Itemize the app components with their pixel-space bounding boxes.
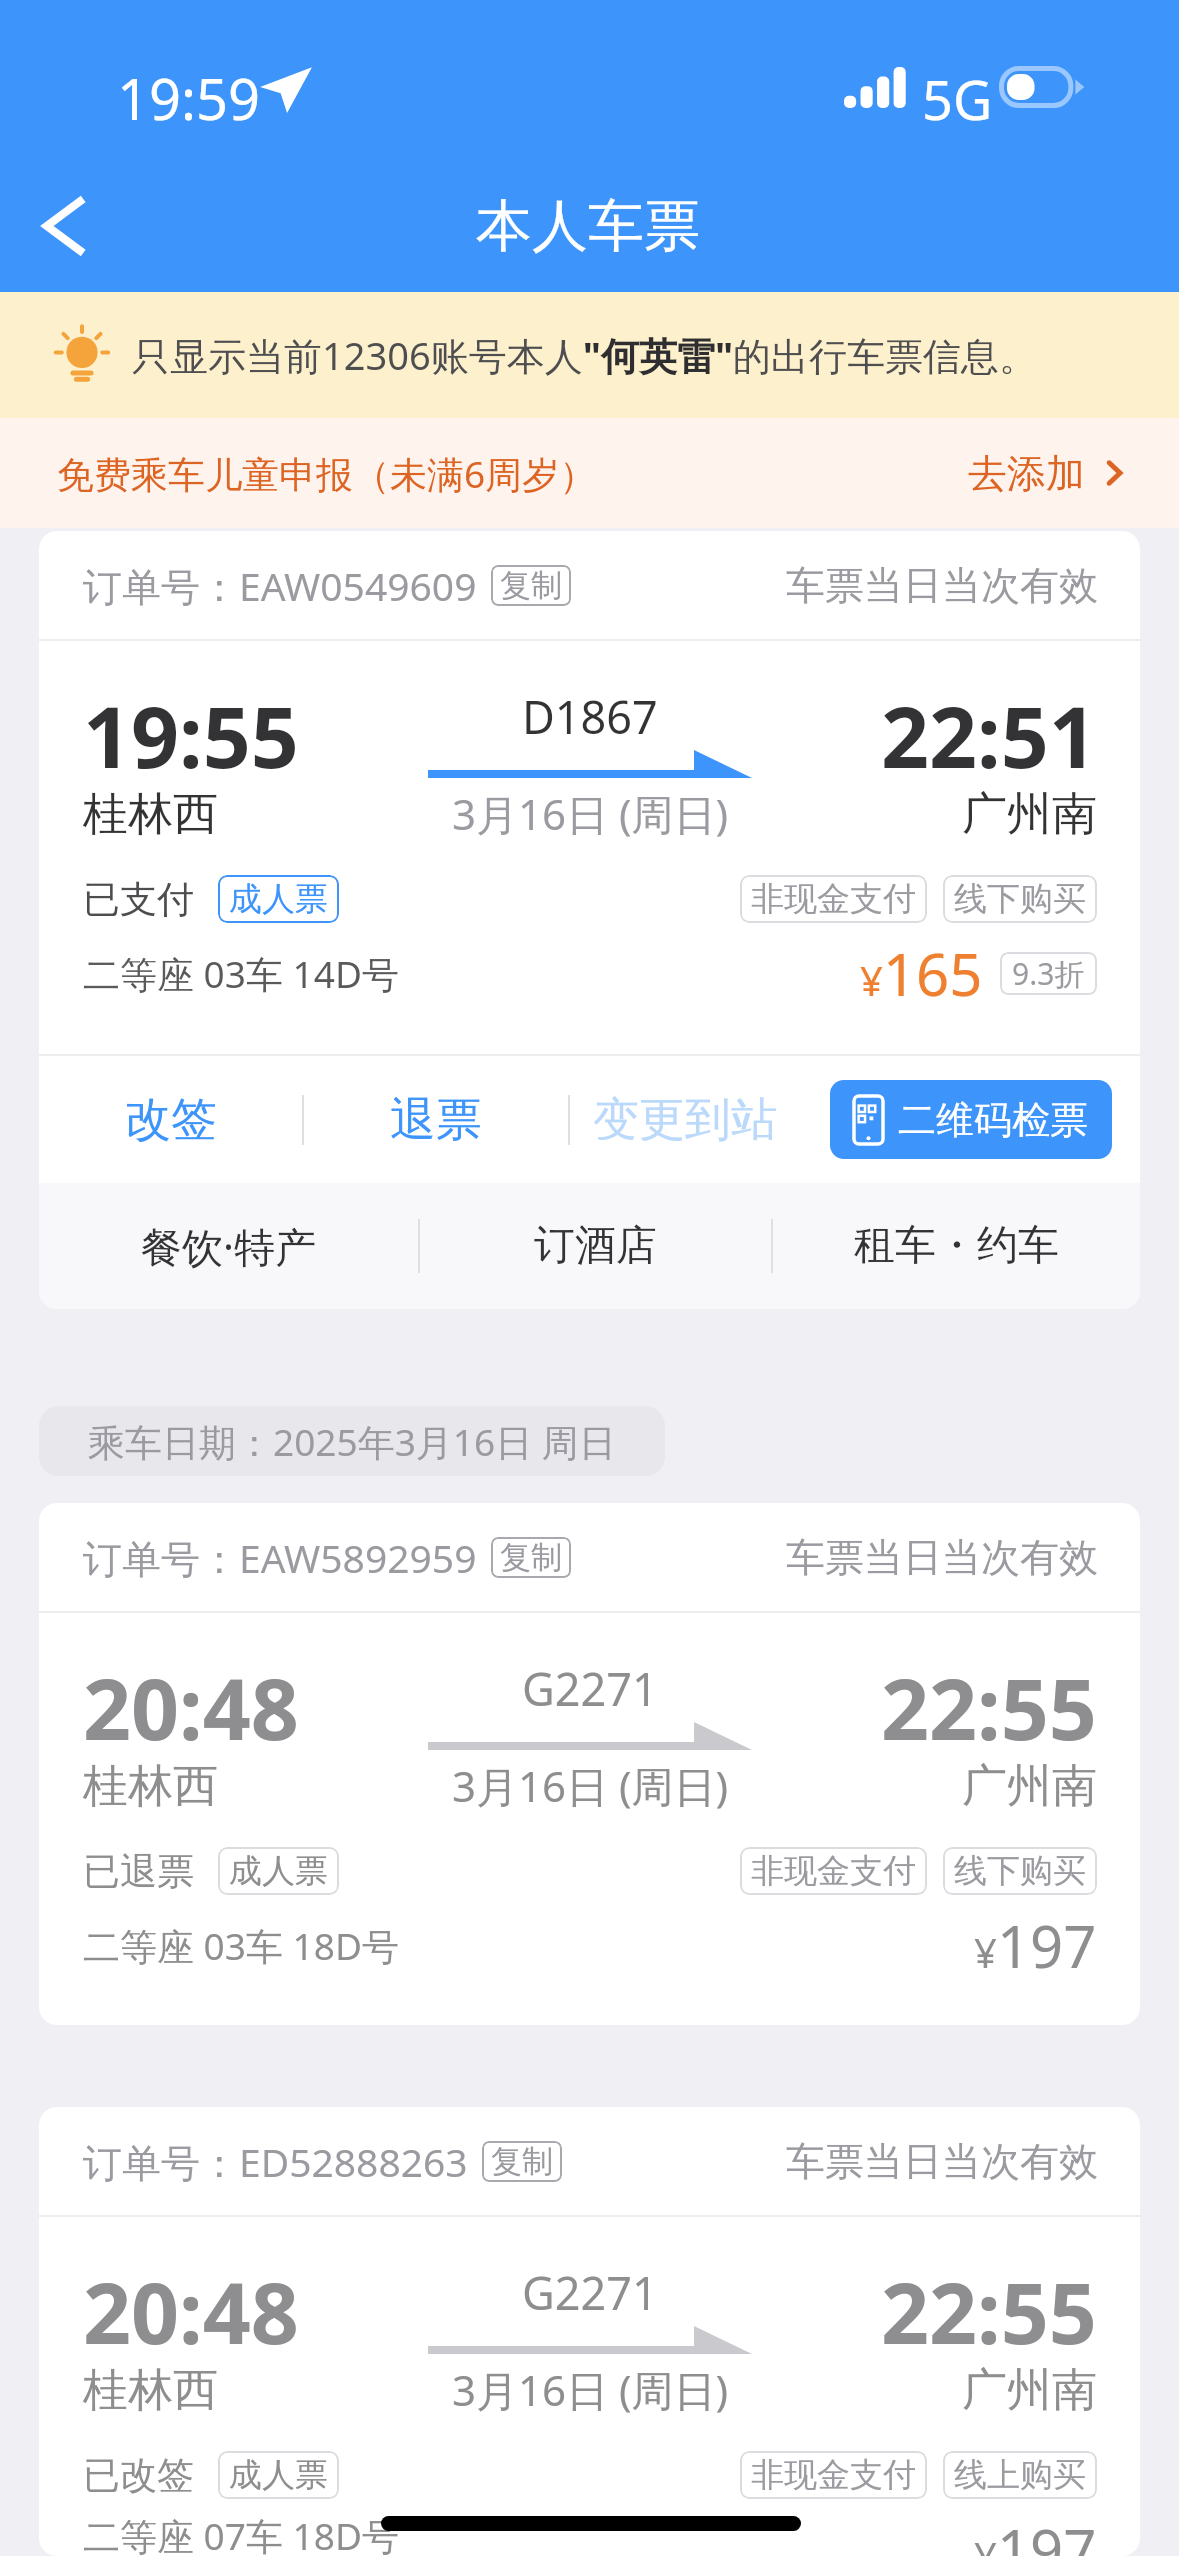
staticText: 非现金支付 — [751, 1850, 916, 1892]
staticText: 5G — [922, 62, 993, 136]
staticText: 二维码检票 — [898, 1096, 1088, 1144]
staticText: 订单号：ED52888263 — [83, 2135, 468, 2188]
staticText: 二等座 03车 18D号 — [83, 1920, 399, 1971]
staticText: 变更到站 — [593, 1091, 777, 1149]
staticText: 免费乘车儿童申报（未满6周岁） — [57, 448, 597, 499]
button[interactable]: 订单号：EAW5892959 — [39, 1503, 1140, 2025]
staticText: 广州南 — [962, 1758, 1097, 1815]
staticText: 车票当日当次有效 — [786, 1533, 1098, 1582]
staticText: ¥165 — [860, 934, 983, 1013]
staticText: 成人票 — [229, 1850, 328, 1892]
staticText: 乘车日期：2025年3月16日 周日 — [88, 1416, 616, 1467]
button[interactable]: Back — [17, 181, 107, 271]
staticText: ¥197 — [974, 1906, 1097, 1985]
button[interactable]: 订单号：EAW0549609 — [39, 531, 1140, 1309]
button[interactable]: 餐饮·特产 — [39, 1183, 418, 1309]
staticText: 20:48 — [83, 1650, 299, 1764]
staticText: 复制 — [500, 566, 562, 605]
staticText: 9.3折 — [1012, 953, 1085, 994]
staticText: 非现金支付 — [751, 2454, 916, 2496]
staticText: 餐饮·特产 — [141, 1218, 316, 1274]
staticText: ¥197 — [974, 2510, 1097, 2556]
staticText: 车票当日当次有效 — [786, 2137, 1098, 2186]
button[interactable]: 退票 — [304, 1056, 568, 1183]
staticText: 广州南 — [962, 2362, 1097, 2419]
staticText: 复制 — [500, 1538, 562, 1577]
staticText: 订酒店 — [534, 1220, 657, 1272]
staticText: G2271 — [522, 1658, 658, 1719]
staticText: 退票 — [390, 1091, 482, 1149]
staticText: 桂林西 — [83, 2362, 218, 2419]
staticText: 本人车票 — [476, 191, 700, 262]
staticText: 桂林西 — [83, 1758, 218, 1815]
staticText: 22:55 — [881, 2254, 1097, 2368]
staticText: 二等座 07车 18D号 — [83, 2510, 399, 2556]
staticText: 20:48 — [83, 2254, 299, 2368]
staticText: 线上购买 — [954, 2454, 1086, 2496]
staticText: 租车・约车 — [854, 1220, 1059, 1272]
staticText: 线下购买 — [954, 1850, 1086, 1892]
staticText: 改签 — [125, 1091, 217, 1149]
staticText: G2271 — [522, 2262, 658, 2323]
button[interactable]: 二维码检票 — [830, 1080, 1112, 1159]
button[interactable]: 订单号：ED52888263 — [39, 2107, 1140, 2556]
staticText: 复制 — [491, 2142, 553, 2181]
staticText: 3月16日 (周日) — [452, 1757, 729, 1814]
staticText: 桂林西 — [83, 786, 218, 843]
button[interactable]: 订酒店 — [420, 1183, 771, 1309]
staticText: 车票当日当次有效 — [786, 561, 1098, 610]
staticText: 已改签 — [83, 2452, 194, 2499]
staticText: 订单号：EAW5892959 — [83, 1531, 477, 1584]
staticText: 订单号：EAW0549609 — [83, 559, 477, 612]
staticText: 只显示当前12306账号本人"何英雷"的出行车票信息。 — [132, 329, 1038, 381]
staticText: 22:55 — [881, 1650, 1097, 1764]
staticText: D1867 — [522, 686, 658, 747]
staticText: 非现金支付 — [751, 878, 916, 920]
staticText: 已退票 — [83, 1848, 194, 1895]
button[interactable]: 改签 — [39, 1056, 302, 1183]
button[interactable]: 免费乘车儿童申报（未满6周岁） — [0, 418, 1179, 528]
staticText: 3月16日 (周日) — [452, 785, 729, 842]
button[interactable]: 租车・约车 — [773, 1183, 1140, 1309]
staticText: 19:55 — [83, 678, 299, 792]
staticText: 19:59 — [117, 60, 261, 136]
staticText: 成人票 — [229, 2454, 328, 2496]
staticText: 二等座 03车 14D号 — [83, 948, 399, 999]
staticText: 3月16日 (周日) — [452, 2361, 729, 2418]
staticText: 已支付 — [83, 876, 194, 923]
staticText: 广州南 — [962, 786, 1097, 843]
staticText: 22:51 — [881, 678, 1097, 792]
staticText: 线下购买 — [954, 878, 1086, 920]
staticText: 去添加 — [968, 449, 1085, 498]
staticText: 成人票 — [229, 878, 328, 920]
